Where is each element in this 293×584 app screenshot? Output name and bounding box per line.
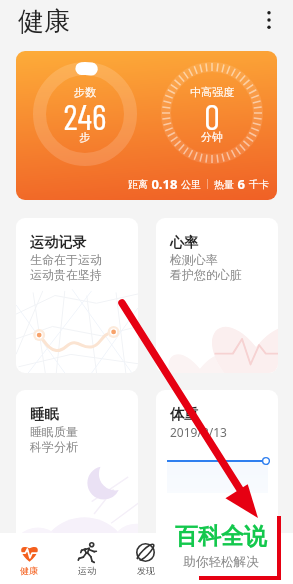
button[interactable]: 心率	[156, 218, 278, 373]
staticText: 我的	[255, 565, 273, 576]
staticText: 步	[33, 130, 137, 144]
staticText: 看护您的心脏	[170, 267, 242, 282]
staticText: 步数	[33, 85, 137, 99]
button[interactable]: 发现	[116, 533, 175, 584]
staticText: 检测心率	[170, 252, 218, 267]
button[interactable]: 健康	[0, 533, 58, 584]
staticText: 体重	[170, 405, 199, 423]
staticText: 健康	[20, 565, 38, 576]
staticText: 运动贵在坚持	[30, 267, 102, 282]
button[interactable]: 运动	[58, 533, 116, 584]
staticText: 设备	[196, 565, 214, 576]
staticText: 公里	[181, 178, 201, 191]
staticText: 百科全说	[163, 522, 279, 551]
staticText: 睡眠	[30, 405, 59, 423]
staticText: 6	[234, 175, 249, 193]
button[interactable]: 设备	[175, 533, 234, 584]
button[interactable]: 运动记录	[16, 218, 138, 373]
staticText: 睡眠质量	[30, 424, 78, 439]
staticText: 心率	[170, 233, 199, 251]
button[interactable]: 我的	[234, 533, 293, 584]
staticText: 运动	[78, 565, 96, 576]
staticText: 中高强度	[161, 85, 263, 99]
staticText: 健康	[18, 5, 70, 38]
staticText: 助你轻松解决	[163, 554, 279, 570]
staticText: 246	[33, 95, 137, 137]
staticText: 0.18	[148, 175, 181, 193]
button[interactable]: 睡眠	[16, 390, 138, 545]
staticText: 68.0	[166, 518, 200, 541]
button[interactable]: 步数	[16, 51, 277, 200]
button[interactable]: More options	[245, 0, 293, 44]
staticText: 运动记录	[30, 233, 87, 251]
staticText: 0	[161, 95, 263, 137]
staticText: 生命在于运动	[30, 252, 102, 267]
staticText: 距离	[128, 178, 148, 191]
staticText: 发现	[137, 565, 155, 576]
staticText: 热量	[214, 178, 234, 191]
staticText: 分钟	[161, 130, 263, 144]
staticText: 2019/3/13	[170, 424, 227, 440]
staticText: 科学分析	[30, 439, 78, 454]
button[interactable]: 体重	[156, 390, 278, 545]
staticText: 千卡	[249, 178, 269, 191]
